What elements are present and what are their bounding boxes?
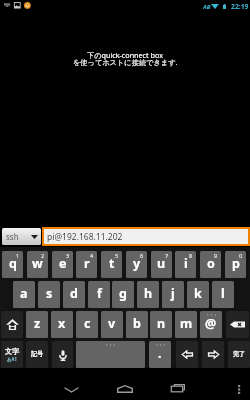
staticText: 4 (90, 252, 94, 259)
staticText: 0 (239, 252, 243, 259)
button[interactable]: o (200, 251, 221, 278)
button[interactable]: t (101, 251, 122, 278)
button[interactable] (52, 341, 73, 368)
staticText: ssh (6, 231, 19, 242)
staticText: 下のquick-connect box (87, 50, 163, 60)
button[interactable] (1, 311, 23, 338)
button[interactable]: d (63, 281, 85, 308)
staticText: d (70, 285, 78, 302)
staticText: b (133, 315, 141, 332)
staticText: w (32, 255, 43, 272)
button[interactable]: 完了 (228, 341, 250, 368)
button[interactable]: 文字 (1, 341, 23, 368)
staticText: i (184, 255, 188, 272)
staticText: f (97, 285, 102, 302)
staticText: q (9, 255, 17, 272)
button[interactable]: @ (200, 311, 222, 338)
button[interactable]: e (52, 251, 73, 278)
staticText: を使ってホストに接続できます. (73, 57, 178, 67)
staticText: 1 (16, 252, 20, 259)
button[interactable]: y (126, 251, 147, 278)
button[interactable]: s (38, 281, 60, 308)
staticText: v (108, 315, 116, 332)
staticText: u (157, 255, 166, 272)
button[interactable]: w (27, 251, 48, 278)
staticText: 22:19 (231, 2, 249, 11)
button[interactable]: . (149, 341, 171, 368)
staticText: あA1 (7, 356, 18, 362)
staticText: c (84, 315, 91, 332)
staticText: 文字 (5, 347, 19, 356)
staticText: 7 (165, 252, 169, 259)
staticText: 5 (115, 252, 119, 259)
staticText: t (109, 255, 115, 272)
staticText: p (232, 255, 240, 272)
button[interactable]: ssh (2, 228, 41, 245)
button[interactable] (176, 341, 198, 368)
staticText: . (158, 345, 162, 362)
button[interactable]: Home (105, 375, 145, 397)
staticText: o (207, 255, 215, 272)
button[interactable]: l (212, 281, 234, 308)
button[interactable]: r (76, 251, 97, 278)
staticText: 3 (66, 252, 70, 259)
staticText: k (194, 285, 202, 302)
staticText: 8 (189, 252, 193, 259)
staticText: g (119, 285, 127, 302)
button[interactable]: i (175, 251, 196, 278)
button[interactable]: j (162, 281, 184, 308)
button[interactable]: Recent apps (158, 374, 198, 396)
staticText: x (58, 315, 66, 332)
button[interactable]: k (187, 281, 209, 308)
staticText: a (20, 285, 28, 302)
staticText: e (59, 255, 67, 272)
staticText: r (84, 255, 90, 272)
staticText: z (34, 315, 41, 332)
button[interactable]: n (150, 311, 172, 338)
staticText: 9 (214, 252, 218, 259)
button[interactable]: h (137, 281, 159, 308)
button[interactable]: x (51, 311, 73, 338)
button[interactable]: f (88, 281, 110, 308)
staticText: AB (203, 3, 211, 11)
button[interactable] (202, 341, 224, 368)
button[interactable]: More options (228, 376, 250, 398)
staticText: h (144, 285, 153, 302)
button[interactable] (226, 311, 249, 338)
staticText: 記号 (31, 350, 43, 358)
staticText: 完了 (233, 350, 245, 358)
staticText: 6 (140, 252, 144, 259)
button[interactable]: z (26, 311, 48, 338)
staticText: y (133, 255, 141, 272)
button[interactable]: b (126, 311, 148, 338)
staticText: 2 (41, 252, 45, 259)
button[interactable]: q (2, 251, 23, 278)
staticText: s (46, 285, 53, 302)
button[interactable]: a (13, 281, 35, 308)
button[interactable]: pi@192.168.11.202 (44, 229, 248, 244)
button[interactable]: c (76, 311, 98, 338)
staticText: l (221, 285, 225, 302)
staticText: n (157, 315, 166, 332)
button[interactable]: m (175, 311, 197, 338)
button[interactable]: v (101, 311, 123, 338)
button[interactable]: g (112, 281, 134, 308)
button[interactable]: Hide keyboard (52, 374, 92, 396)
button[interactable]: p (225, 251, 246, 278)
button[interactable]: 記号 (26, 341, 48, 368)
staticText: pi@192.168.11.202 (47, 231, 123, 243)
staticText: @ (205, 315, 217, 332)
button[interactable]: u (151, 251, 172, 278)
staticText: m (180, 315, 193, 332)
staticText: j (171, 285, 175, 302)
